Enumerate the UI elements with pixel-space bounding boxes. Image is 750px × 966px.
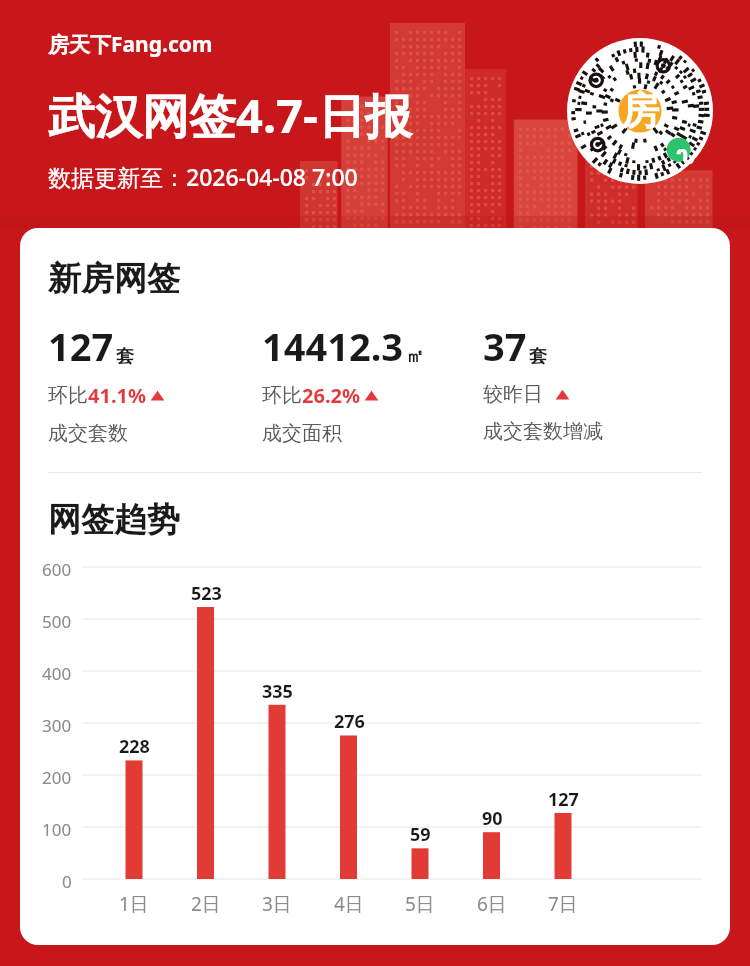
staticText: 房天下Fang.com xyxy=(48,30,213,59)
staticText: 335 xyxy=(262,679,293,704)
staticText: 200 xyxy=(42,766,72,789)
staticText: 武汉网签4.7-日报 xyxy=(48,83,413,147)
staticText: 127 xyxy=(548,787,579,812)
staticText: 6日 xyxy=(477,891,507,917)
staticText: 2日 xyxy=(191,891,221,917)
button[interactable]: 扫码关注小程序 xyxy=(567,38,713,184)
staticText: 网签趋势 xyxy=(48,499,180,541)
staticText: 成交套数增减 xyxy=(483,419,603,444)
staticText: 26.2% xyxy=(302,382,360,409)
staticText: 523 xyxy=(191,581,222,606)
staticText: 127 xyxy=(48,320,114,372)
staticText: 3日 xyxy=(262,891,292,917)
button[interactable]: 127 xyxy=(48,320,262,446)
button[interactable]: 14412.3 xyxy=(262,320,483,446)
staticText: 5日 xyxy=(405,891,435,917)
staticText: ㎡ xyxy=(406,345,424,368)
staticText: 0 xyxy=(62,870,72,893)
staticText: 成交套数 xyxy=(48,421,128,446)
staticText: ᔐ xyxy=(676,145,695,168)
staticText: 59 xyxy=(410,822,431,847)
staticText: 14412.3 xyxy=(262,320,404,372)
staticText: 成交面积 xyxy=(262,421,342,446)
staticText: 新房网签 xyxy=(48,258,180,300)
staticText: 房 xyxy=(621,87,659,135)
staticText: 500 xyxy=(42,610,72,633)
staticText: 4日 xyxy=(334,891,364,917)
staticText: 7日 xyxy=(548,891,578,917)
staticText: 300 xyxy=(42,714,72,737)
button[interactable]: 37 xyxy=(483,320,603,444)
staticText: 环比 xyxy=(48,383,88,408)
staticText: 套 xyxy=(529,345,547,368)
staticText: 100 xyxy=(42,818,72,841)
staticText: 228 xyxy=(119,734,150,759)
staticText: 400 xyxy=(42,662,72,685)
staticText: 数据更新至：2026-04-08 7:00 xyxy=(48,161,358,192)
staticText: 276 xyxy=(334,709,365,734)
staticText: 套 xyxy=(116,345,134,368)
staticText: 环比 xyxy=(262,383,302,408)
staticText: 较昨日 xyxy=(483,382,543,407)
staticText: 600 xyxy=(42,558,72,581)
staticText: 1日 xyxy=(119,891,149,917)
staticText: 37 xyxy=(483,320,527,372)
staticText: 90 xyxy=(482,806,503,831)
staticText: 41.1% xyxy=(88,382,146,409)
